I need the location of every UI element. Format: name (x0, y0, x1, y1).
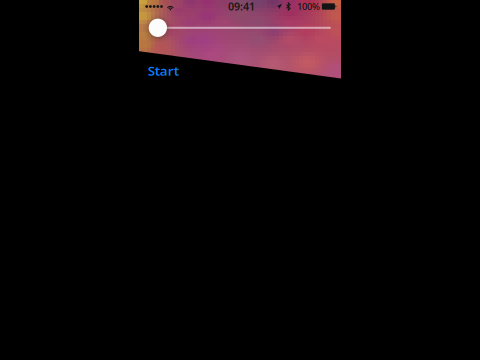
staticText: Start (148, 62, 179, 79)
button[interactable]: Brightness (149, 18, 332, 38)
staticText: 09:41 (228, 0, 255, 13)
button[interactable]: Start (148, 62, 179, 79)
staticText: 100% (297, 0, 320, 13)
